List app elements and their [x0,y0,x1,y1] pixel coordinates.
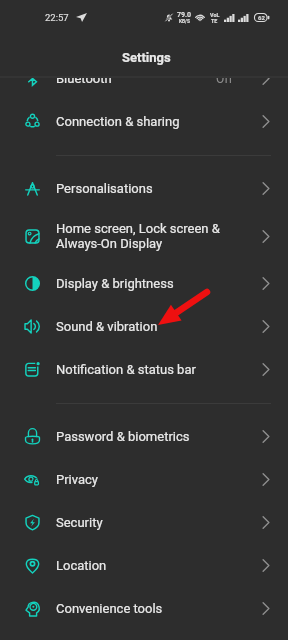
staticText: VoL [210,12,220,18]
button[interactable]: Display & brightness [0,262,288,305]
button[interactable]: Notification & status bar [0,348,288,391]
staticText: Bluetooth [56,77,112,86]
staticText: Personalisations [56,181,153,196]
staticText: Location [56,558,107,573]
staticText: Convenience tools [56,601,163,616]
button[interactable]: Location [0,544,288,587]
staticText: Sound & vibration [56,319,158,334]
staticText: 62 [258,14,265,21]
staticText: Display & brightness [56,276,174,291]
button[interactable]: Personalisations [0,167,288,210]
staticText: Password & biometrics [56,429,190,444]
button[interactable]: Password & biometrics [0,415,288,458]
button[interactable]: Sound & vibration [0,305,288,348]
staticText: Privacy [56,472,98,487]
staticText: Home screen, Lock screen & [56,221,220,236]
button[interactable]: Security [0,501,288,544]
staticText: KB/S [179,19,190,25]
button[interactable]: Home screen, Lock screen & [0,210,288,262]
staticText: Connection & sharing [56,114,180,129]
button[interactable]: Bluetooth [0,77,288,100]
staticText: Always-On Display [56,236,163,251]
staticText: Off [216,77,233,86]
staticText: 79.0 [177,11,192,19]
staticText: Settings [122,50,171,65]
button[interactable]: Convenience tools [0,587,288,630]
staticText: Security [56,515,103,530]
staticText: Notification & status bar [56,362,196,377]
staticText: TE [211,18,218,24]
button[interactable]: Privacy [0,458,288,501]
button[interactable]: Connection & sharing [0,100,288,143]
staticText: 22:57 [45,12,69,23]
button[interactable]: 22:57 [0,0,288,76]
